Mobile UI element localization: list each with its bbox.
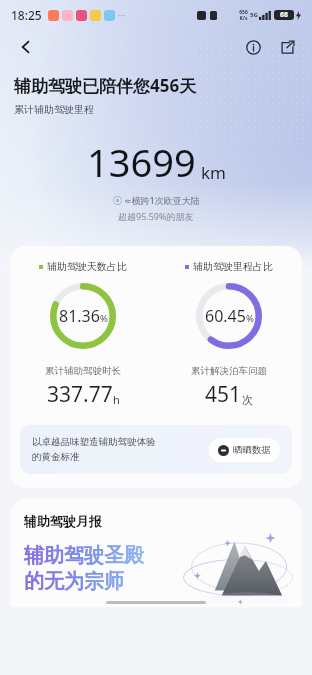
staticText: 辅助驾驶里程占比 (193, 260, 273, 273)
staticText: km (201, 161, 226, 184)
staticText: 81.36 (59, 305, 100, 327)
staticText: 次 (242, 393, 253, 407)
staticText: 累计辅助驾驶时长 (45, 365, 121, 377)
staticText: 辅助驾驶天数占比 (47, 260, 127, 273)
button[interactable]: 辅助驾驶月报 (10, 499, 302, 607)
staticText: 68 (280, 10, 289, 20)
staticText: 以卓越品味塑造辅助驾驶体验 的黄金标准 (32, 436, 156, 463)
staticText: h (113, 392, 120, 407)
staticText: 晒晒数据 (233, 444, 271, 456)
staticText: ≈横跨1次欧亚大陆 (124, 194, 200, 206)
staticText: 337.77 (47, 380, 113, 409)
staticText: 656 K/s (239, 9, 248, 22)
staticText: ··· (118, 9, 126, 21)
staticText: 451 (205, 380, 242, 409)
staticText: 辅助驾驶月报 (24, 513, 102, 529)
staticText: % (100, 312, 108, 325)
button[interactable]: Share (272, 32, 302, 62)
staticText: 累计辅助驾驶里程 (14, 103, 94, 116)
button[interactable]: Info (238, 32, 268, 62)
staticText: 辅助驾驶圣殿 的无为宗师 (24, 543, 144, 594)
button[interactable]: Back (10, 31, 42, 63)
staticText: 超越95.59%的朋友 (118, 210, 194, 222)
staticText: 辅助驾驶已陪伴您456天 (14, 74, 197, 97)
staticText: % (246, 312, 254, 325)
staticText: 累计解决泊车问题 (191, 365, 267, 377)
staticText: 18:25 (11, 7, 42, 23)
staticText: 5G (250, 11, 258, 19)
staticText: 13699 (87, 136, 196, 188)
button[interactable]: 晒晒数据 (209, 438, 280, 462)
staticText: 60.45 (205, 305, 246, 327)
